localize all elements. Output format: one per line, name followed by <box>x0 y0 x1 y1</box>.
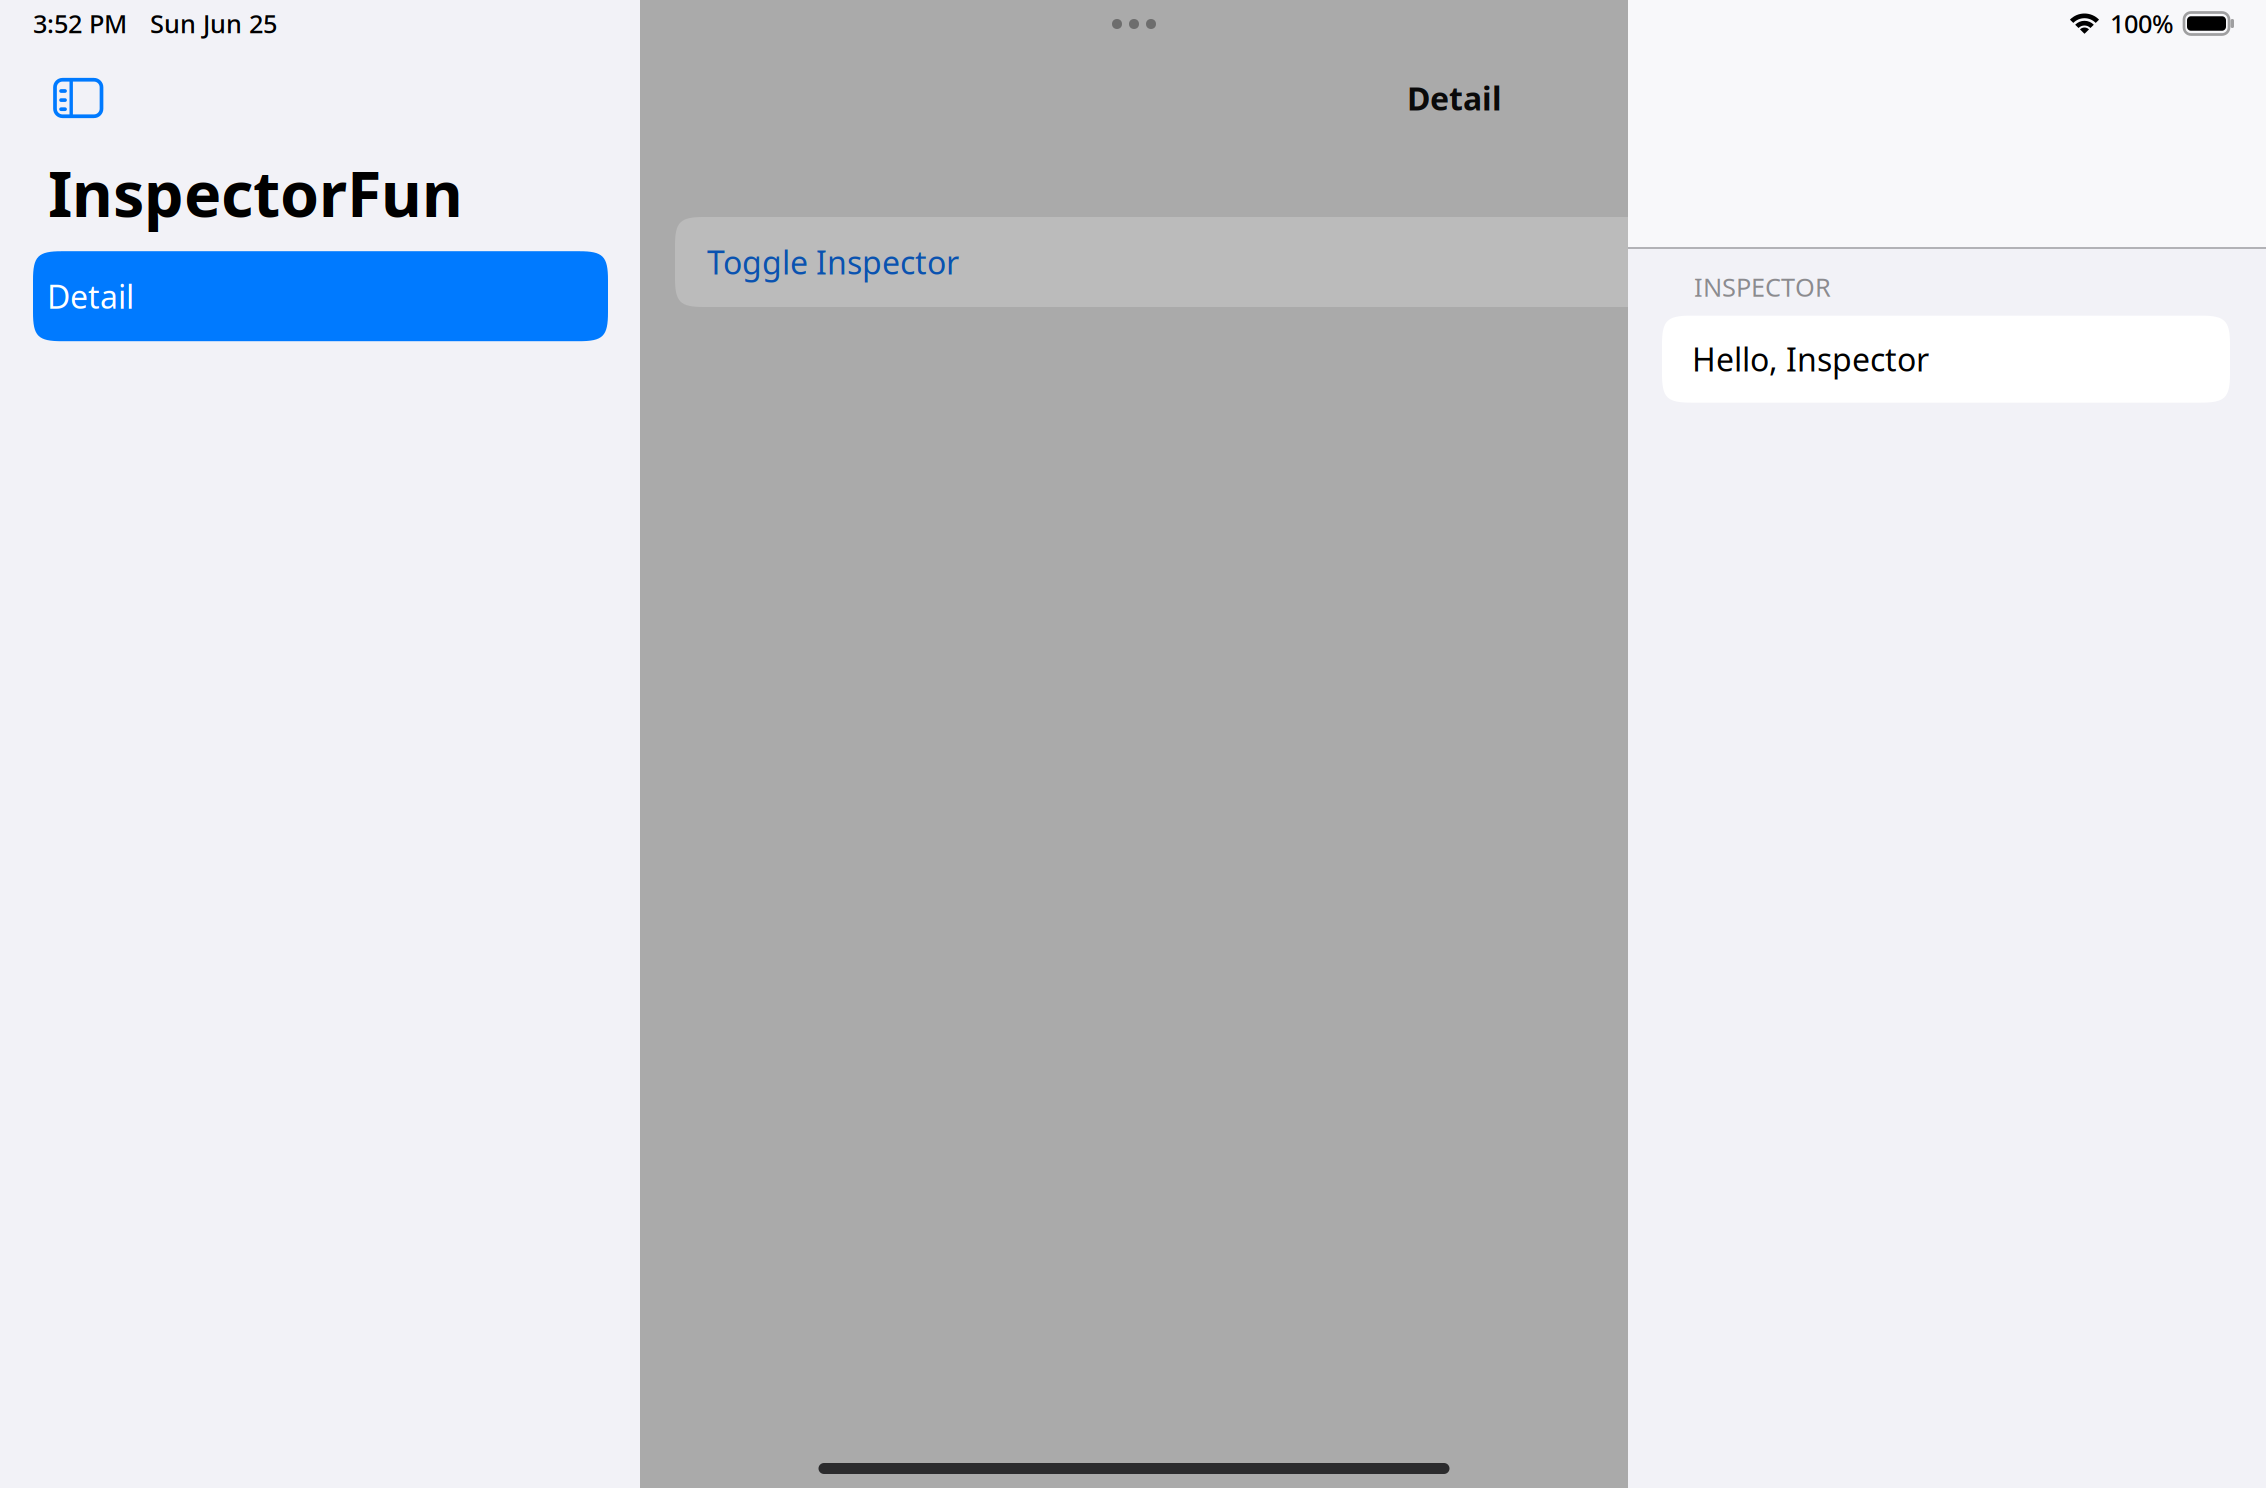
staticText: 3:52 PM <box>33 7 127 40</box>
staticText: Toggle Inspector <box>707 241 959 283</box>
staticText: Sun Jun 25 <box>150 7 277 40</box>
staticText: INSPECTOR <box>1694 270 1831 304</box>
staticText: InspectorFun <box>48 151 463 234</box>
button[interactable]: Detail <box>33 251 608 341</box>
staticText: 100% <box>2110 7 2174 40</box>
staticText: Hello, Inspector <box>1692 338 1929 380</box>
staticText: Detail <box>47 275 134 317</box>
button[interactable]: Toggle Sidebar <box>0 67 640 129</box>
button[interactable]: Toggle Inspector <box>640 217 1628 307</box>
staticText: Detail <box>1407 77 1502 119</box>
